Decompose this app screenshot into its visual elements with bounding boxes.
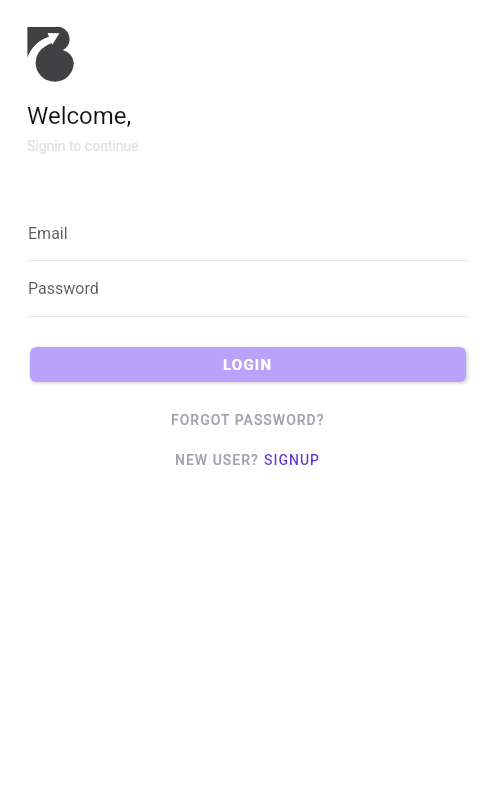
staticText: Password bbox=[28, 279, 99, 298]
button[interactable]: LOGIN bbox=[30, 347, 466, 382]
staticText: Signin to continue bbox=[27, 138, 139, 154]
staticText: LOGIN bbox=[223, 356, 273, 374]
staticText: Welcome, bbox=[27, 102, 132, 130]
button[interactable]: SIGNUP bbox=[264, 448, 321, 472]
staticText: FORGOT PASSWORD? bbox=[171, 412, 325, 428]
staticText: SIGNUP bbox=[264, 452, 321, 468]
staticText: Email bbox=[28, 224, 68, 243]
staticText: NEW USER? bbox=[175, 452, 259, 468]
button[interactable]: FORGOT PASSWORD? bbox=[161, 408, 335, 432]
